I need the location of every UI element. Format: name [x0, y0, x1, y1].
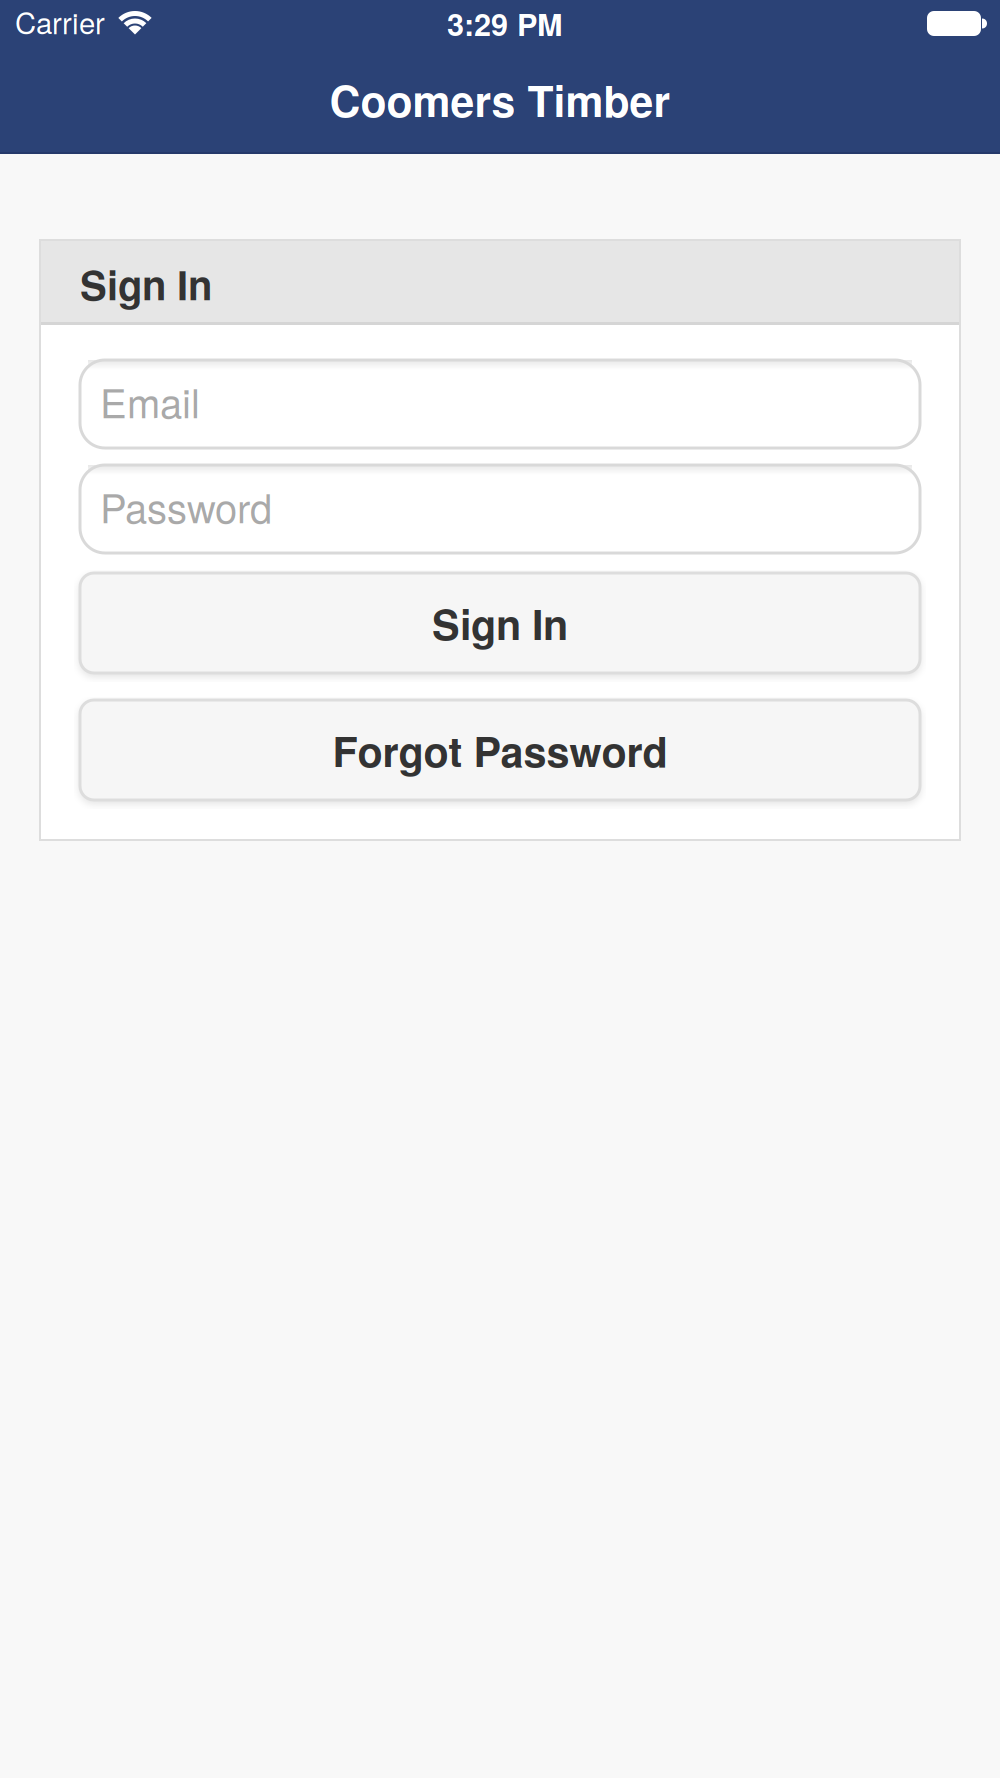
button[interactable]: Sign In: [80, 573, 920, 673]
staticText: Forgot Password: [332, 720, 667, 780]
staticText: Sign In: [432, 593, 568, 653]
staticText: Carrier: [15, 0, 105, 42]
staticText: 3:29 PM: [447, 1, 563, 45]
button[interactable]: Email: [80, 360, 920, 448]
staticText: Password: [100, 477, 272, 535]
staticText: Email: [100, 372, 200, 430]
staticText: Sign In: [80, 255, 212, 313]
button[interactable]: Password: [80, 465, 920, 553]
button[interactable]: Forgot Password: [80, 700, 920, 800]
staticText: Coomers Timber: [329, 69, 670, 130]
